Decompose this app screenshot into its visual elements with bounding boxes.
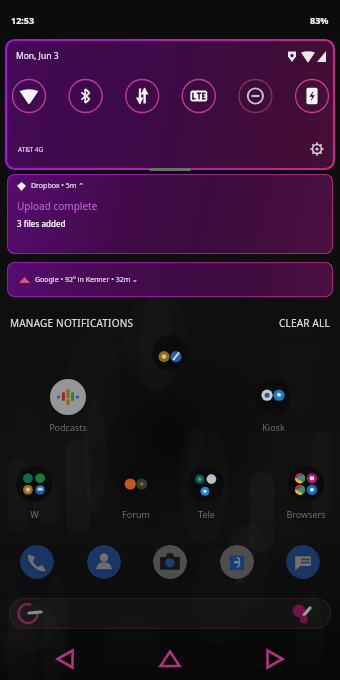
staticText: 12:53 — [11, 14, 35, 26]
staticText: Mon, Jun 3 — [16, 50, 59, 62]
staticText: Upload complete — [17, 199, 98, 213]
staticText: Kiosk — [262, 421, 285, 433]
staticText: Tele — [198, 508, 215, 520]
button[interactable]: Browsers — [282, 466, 330, 520]
button[interactable]: W — [10, 466, 58, 520]
button[interactable] — [9, 598, 331, 629]
button[interactable]: Camera — [153, 545, 187, 579]
button[interactable]: Back — [52, 645, 80, 673]
button[interactable]: Podcasts — [44, 379, 92, 433]
button[interactable]: Tele — [182, 466, 230, 520]
button[interactable]: Recent apps — [260, 645, 288, 673]
button[interactable]: Messages — [286, 545, 320, 579]
staticText: 3 files added — [17, 218, 66, 229]
staticText: Dropbox • 5m ⌃ — [31, 181, 85, 191]
staticText: W — [30, 508, 39, 520]
button[interactable]: Dropbox • 5m ⌃ — [7, 174, 333, 254]
button[interactable]: Google • 92° in Kenner • 32m ⌄ — [7, 262, 333, 297]
staticText: Google • 92° in Kenner • 32m ⌄ — [35, 275, 138, 285]
button[interactable]: Home — [156, 645, 184, 673]
button[interactable]: Calendar — [220, 545, 254, 579]
button[interactable]: Settings — [310, 142, 324, 156]
button[interactable]: MANAGE NOTIFICATIONS — [10, 316, 134, 330]
staticText: Forum — [122, 508, 150, 520]
button[interactable] — [149, 168, 191, 171]
button[interactable]: Contacts — [87, 545, 121, 579]
button[interactable]: Phone — [20, 545, 54, 579]
button[interactable]: CLEAR ALL — [279, 316, 330, 330]
staticText: MANAGE NOTIFICATIONS — [10, 316, 134, 330]
staticText: Browsers — [286, 508, 326, 520]
button[interactable]: Forum — [112, 466, 160, 520]
staticText: 83% — [310, 14, 329, 26]
button[interactable]: Kiosk — [249, 379, 297, 433]
staticText: CLEAR ALL — [279, 316, 330, 330]
staticText: Podcasts — [49, 421, 87, 433]
staticText: AT&T 4G — [18, 145, 44, 154]
